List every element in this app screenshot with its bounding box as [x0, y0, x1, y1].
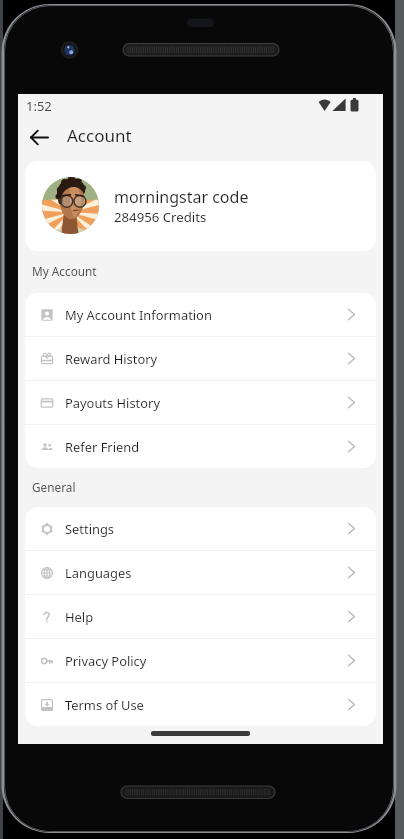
staticText: Refer Friend: [65, 438, 140, 456]
button[interactable]: My Account Information: [25, 293, 376, 336]
button[interactable]: Back: [25, 123, 53, 151]
button[interactable]: morningstar code: [25, 161, 376, 251]
button[interactable]: Languages: [25, 551, 376, 594]
button[interactable]: Privacy Policy: [25, 639, 376, 682]
staticText: 284956 Credits: [114, 208, 207, 226]
staticText: My Account Information: [65, 306, 212, 324]
staticText: Languages: [65, 564, 132, 582]
button[interactable]: Payouts History: [25, 381, 376, 424]
button[interactable]: Refer Friend: [25, 425, 376, 468]
staticText: Privacy Policy: [65, 652, 147, 670]
staticText: Help: [65, 608, 94, 626]
staticText: Payouts History: [65, 394, 160, 412]
staticText: My Account: [32, 263, 97, 279]
staticText: Settings: [65, 520, 115, 538]
button[interactable]: Settings: [25, 507, 376, 550]
button[interactable]: Reward History: [25, 337, 376, 380]
staticText: Account: [67, 124, 132, 147]
button[interactable]: Help: [25, 595, 376, 638]
staticText: Terms of Use: [65, 696, 144, 714]
staticText: 1:52: [26, 97, 52, 115]
staticText: morningstar code: [114, 186, 249, 208]
button[interactable]: Terms of Use: [25, 683, 376, 726]
staticText: General: [32, 479, 76, 495]
staticText: Reward History: [65, 350, 158, 368]
